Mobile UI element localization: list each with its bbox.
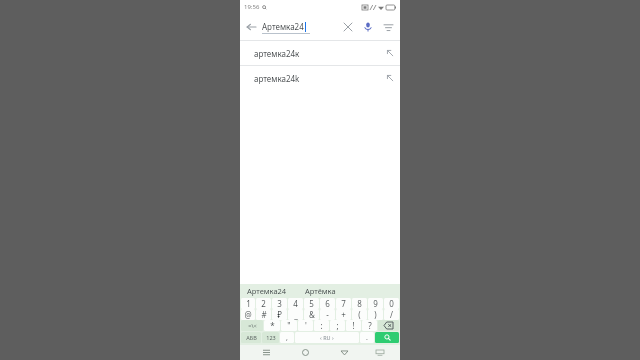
button[interactable]: _ — [288, 309, 303, 320]
staticText: ; — [336, 320, 339, 331]
button[interactable]: , — [280, 332, 294, 343]
button[interactable]: ( — [352, 309, 367, 320]
staticText: 2 — [261, 298, 266, 309]
staticText: ' — [305, 320, 307, 331]
button[interactable]: 1 — [241, 298, 255, 309]
button[interactable]: 7 — [336, 298, 351, 309]
button[interactable]: 5 — [304, 298, 319, 309]
staticText: & — [309, 309, 315, 320]
staticText: артемка24k — [254, 73, 300, 84]
staticText: =\< — [248, 322, 257, 329]
button[interactable]: артемка24k — [240, 66, 400, 90]
button[interactable]: Clear — [338, 17, 358, 37]
button[interactable]: Hide keyboard — [371, 345, 389, 360]
staticText: артемка24к — [254, 48, 300, 59]
staticText: 9 — [373, 298, 378, 309]
button[interactable]: . — [360, 332, 374, 343]
staticText: . — [366, 333, 368, 343]
staticText: " — [287, 320, 291, 331]
staticText: 19:56 — [244, 3, 260, 11]
button[interactable]: / — [384, 309, 399, 320]
staticText: Артёмка — [305, 286, 336, 296]
button[interactable]: =\< — [241, 320, 263, 331]
staticText: * — [270, 320, 275, 331]
button[interactable]: Search — [375, 332, 399, 343]
staticText: ? — [368, 320, 372, 331]
staticText: Артемка24 — [247, 286, 287, 296]
staticText: 0 — [389, 298, 394, 309]
button[interactable]: 4 — [288, 298, 303, 309]
button[interactable]: ) — [368, 309, 383, 320]
staticText: - — [326, 309, 329, 320]
button[interactable]: & — [304, 309, 319, 320]
button[interactable]: Space — [295, 332, 359, 343]
staticText: , — [286, 333, 288, 343]
button[interactable]: Артемка24 — [240, 284, 294, 298]
staticText: Артемка24 — [262, 21, 304, 32]
staticText: 1 — [246, 298, 251, 309]
button[interactable]: 3 — [272, 298, 287, 309]
staticText: ! — [352, 320, 355, 331]
button[interactable]: 123 — [262, 332, 279, 343]
button[interactable]: " — [281, 320, 297, 331]
button[interactable]: # — [256, 309, 271, 320]
staticText: ) — [374, 309, 377, 320]
staticText: / — [390, 309, 393, 320]
staticText: 7 — [341, 298, 346, 309]
button[interactable]: ? — [362, 320, 377, 331]
staticText: # — [261, 309, 267, 320]
button[interactable]: артемка24к — [240, 41, 400, 65]
button[interactable]: Back — [240, 16, 262, 38]
staticText: 5 — [309, 298, 314, 309]
button[interactable]: АБВ — [241, 332, 261, 343]
button[interactable]: - — [320, 309, 335, 320]
staticText: 123 — [266, 334, 276, 341]
staticText: ₽ — [277, 309, 282, 320]
staticText: 4 — [293, 298, 298, 309]
button[interactable]: Backspace — [378, 320, 399, 331]
staticText: + — [341, 309, 346, 320]
staticText: 6 — [325, 298, 330, 309]
staticText: _ — [294, 309, 298, 320]
staticText: 3 — [277, 298, 282, 309]
staticText: АБВ — [246, 334, 257, 341]
staticText: ( — [358, 309, 361, 320]
button[interactable]: Recents — [257, 345, 275, 360]
button[interactable]: ₽ — [272, 309, 287, 320]
button[interactable]: 6 — [320, 298, 335, 309]
button[interactable]: * — [264, 320, 280, 331]
button[interactable]: Back — [335, 345, 353, 360]
button[interactable]: 9 — [368, 298, 383, 309]
button[interactable]: Артёмка — [294, 284, 347, 298]
button[interactable]: 8 — [352, 298, 367, 309]
button[interactable]: 2 — [256, 298, 271, 309]
button[interactable]: ' — [298, 320, 313, 331]
button[interactable]: 0 — [384, 298, 399, 309]
button[interactable]: : — [314, 320, 329, 331]
staticText: 8 — [357, 298, 362, 309]
button[interactable]: + — [336, 309, 351, 320]
button[interactable]: ; — [330, 320, 345, 331]
staticText: @ — [244, 309, 252, 320]
button[interactable]: @ — [241, 309, 255, 320]
staticText: : — [320, 320, 323, 331]
button[interactable]: Filter — [378, 17, 398, 37]
button[interactable]: Home — [296, 345, 314, 360]
button[interactable]: Voice search — [358, 17, 378, 37]
button[interactable]: ! — [346, 320, 361, 331]
staticText: ‹ RU › — [320, 334, 334, 341]
